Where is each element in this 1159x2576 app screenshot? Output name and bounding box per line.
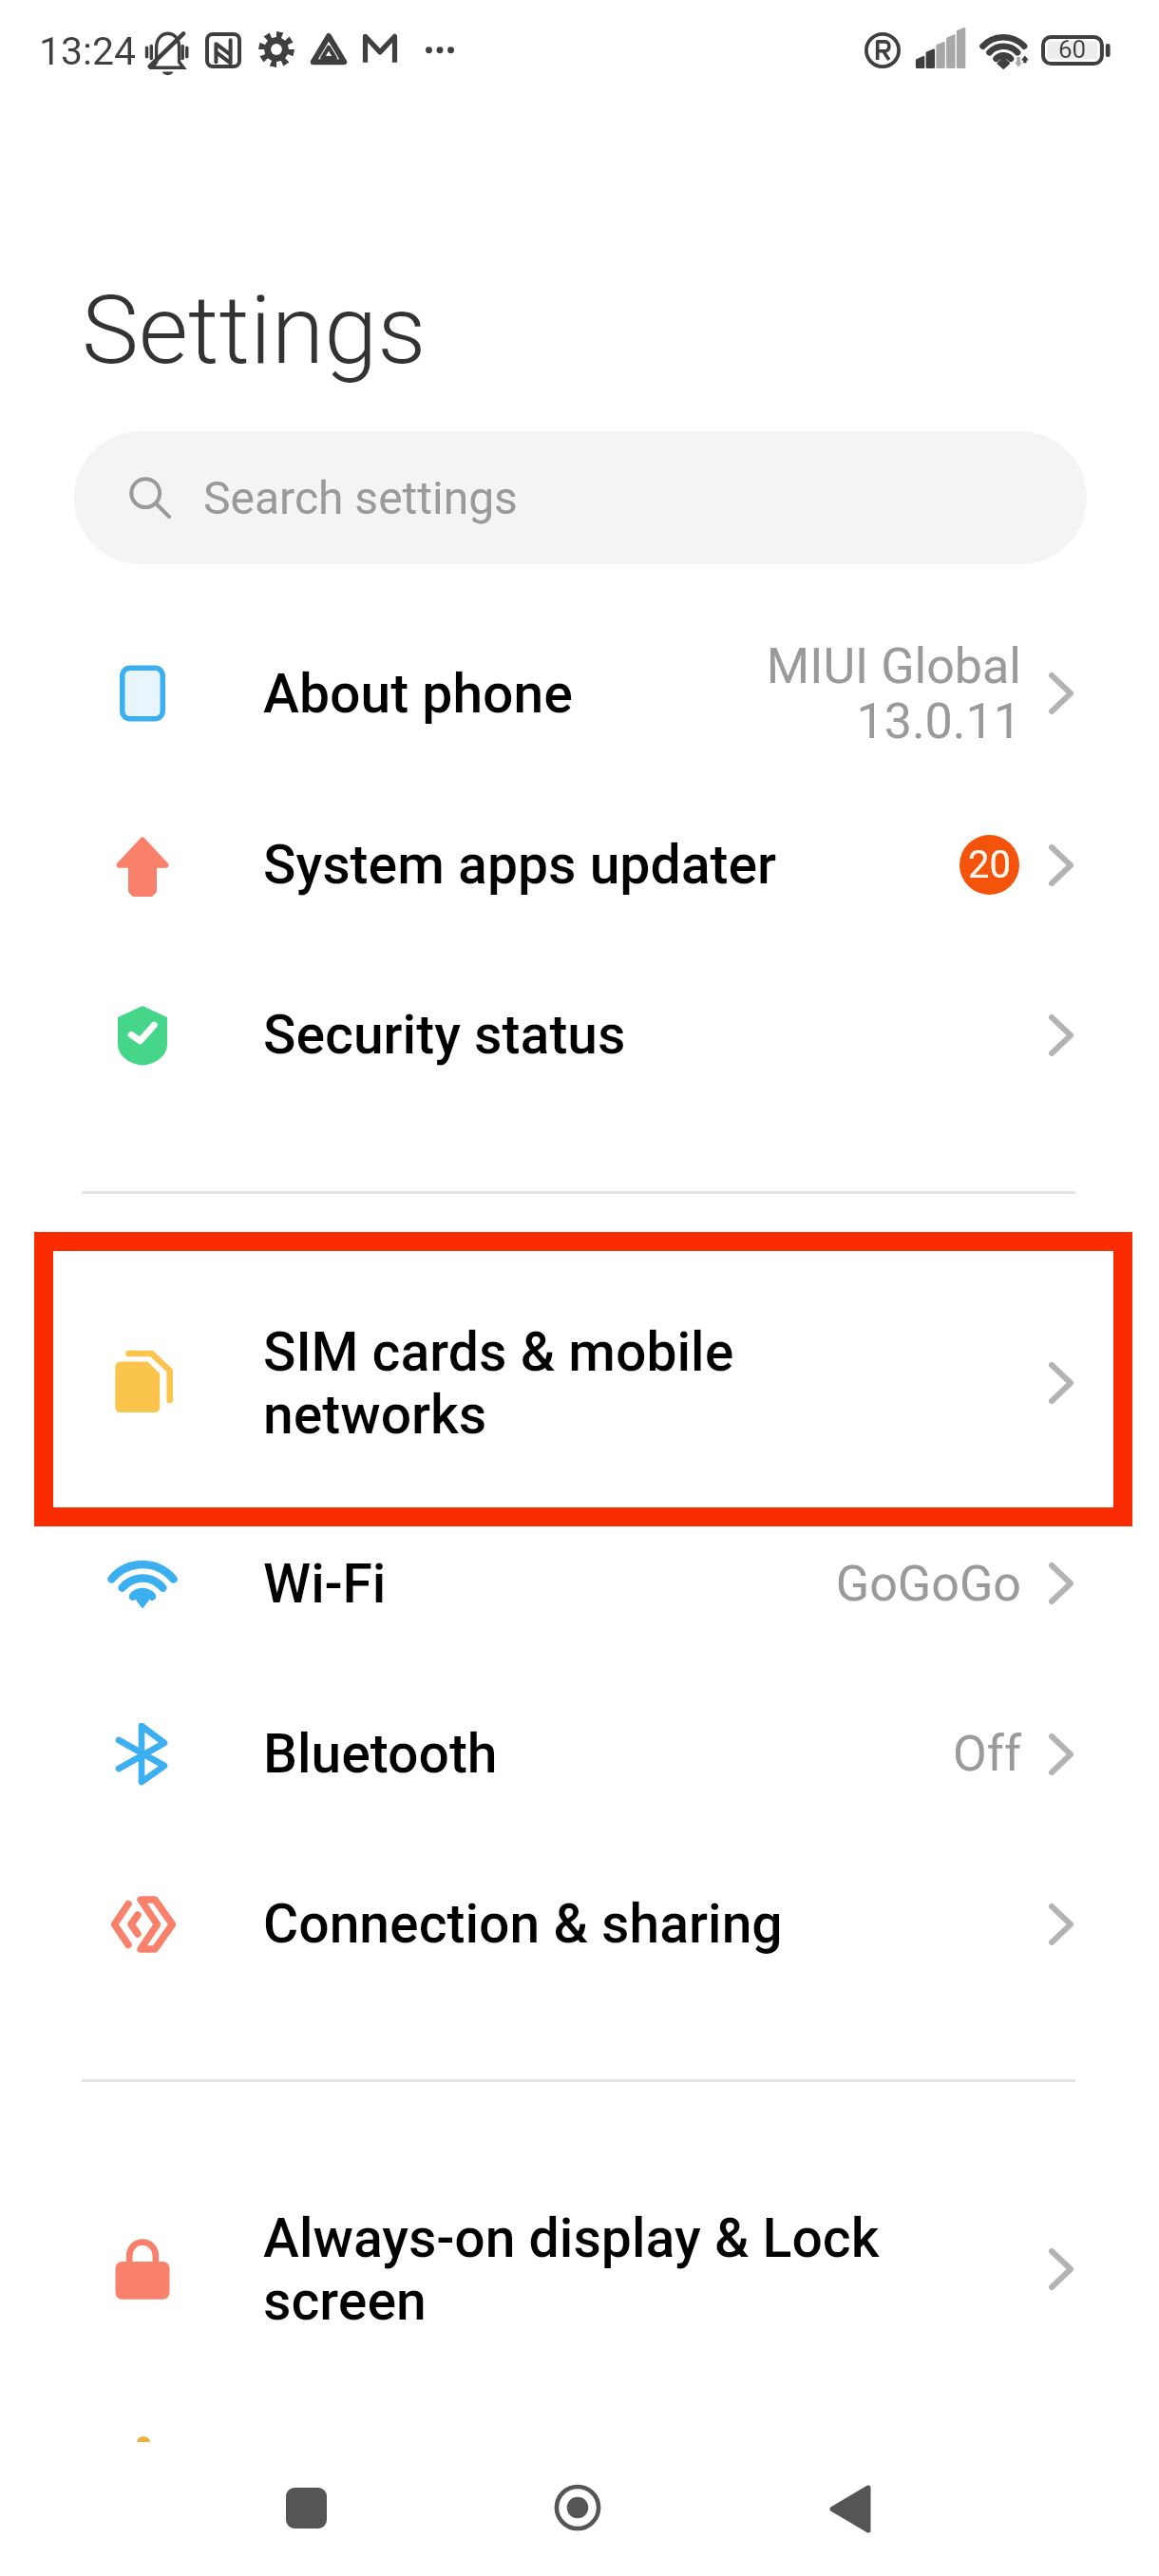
staticText: Bluetooth	[263, 1722, 902, 1786]
staticText: 60	[1058, 35, 1087, 64]
staticText: Security status	[263, 1003, 902, 1067]
staticText: About phone	[263, 662, 902, 726]
staticText: Off	[953, 1725, 1021, 1783]
staticText: Connection & sharing	[263, 1892, 902, 1956]
button[interactable]: Always-on display & Lock screen	[0, 2174, 1159, 2364]
button[interactable]: About phone	[0, 608, 1159, 779]
staticText: Wi-Fi	[263, 1552, 902, 1616]
button[interactable]: Home	[555, 2485, 600, 2530]
button[interactable]: Security status	[0, 957, 1159, 1113]
staticText: Search settings	[203, 471, 518, 524]
staticText: MIUI Global 13.0.11	[766, 637, 1021, 750]
button[interactable]: System apps updater	[0, 780, 1159, 950]
button[interactable]: Back	[829, 2483, 871, 2532]
staticText: Settings	[82, 274, 427, 386]
staticText: 13:24	[39, 28, 137, 74]
staticText: GoGoGo	[835, 1555, 1021, 1613]
button[interactable]: Wi-Fi	[0, 1502, 1159, 1665]
staticText: 20	[968, 843, 1011, 887]
button[interactable]: Bluetooth	[0, 1669, 1159, 1839]
staticText: System apps updater	[263, 833, 902, 897]
staticText: SIM cards & mobile networks	[263, 1320, 902, 1447]
button[interactable]: Search settings	[74, 431, 1087, 564]
button[interactable]: Connection & sharing	[0, 1846, 1159, 2002]
button[interactable]: Recents	[286, 2488, 327, 2529]
staticText: Always-on display & Lock screen	[263, 2207, 902, 2333]
button[interactable]: SIM cards & mobile networks	[0, 1237, 1159, 1529]
